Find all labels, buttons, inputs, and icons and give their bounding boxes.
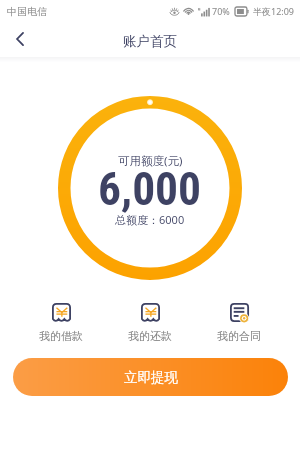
staticText: 账户首页 — [123, 33, 177, 50]
staticText: 总额度：6000 — [115, 212, 185, 227]
button[interactable]: 立即提现 — [13, 358, 288, 396]
staticText: 中国电信 — [7, 5, 47, 18]
button[interactable]: Back — [4, 23, 36, 55]
button[interactable]: 我的还款 — [106, 298, 194, 346]
staticText: 我的合同 — [217, 329, 261, 343]
staticText: 半夜12:09 — [253, 5, 295, 17]
staticText: 可用额度(元) — [118, 153, 183, 169]
staticText: 我的还款 — [128, 329, 172, 343]
staticText: 6,000 — [98, 163, 202, 216]
button[interactable]: 我的合同 — [195, 298, 283, 346]
staticText: 我的借款 — [39, 329, 83, 343]
button[interactable]: 我的借款 — [17, 298, 105, 346]
staticText: 70% — [212, 5, 230, 17]
staticText: 立即提现 — [124, 369, 178, 386]
